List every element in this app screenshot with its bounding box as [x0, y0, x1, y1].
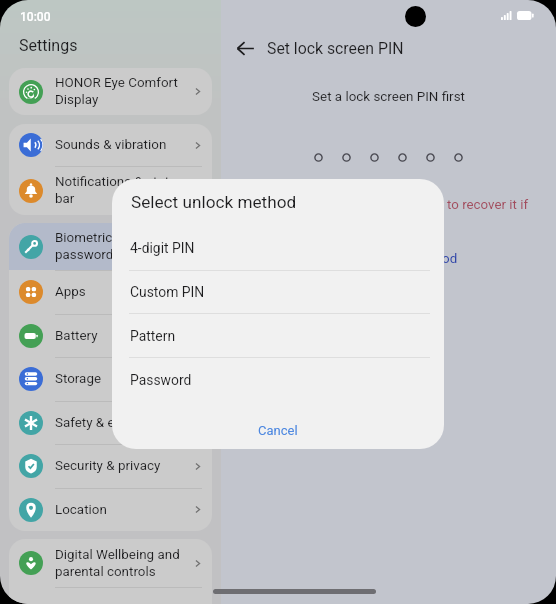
- staticText: Battery: [55, 328, 191, 344]
- button[interactable]: Digital Wellbeing and parental controls: [9, 539, 212, 587]
- staticText: Set lock screen PIN: [267, 39, 404, 58]
- staticText: Digital Wellbeing and parental controls: [55, 547, 191, 580]
- staticText: Password: [130, 372, 192, 388]
- button[interactable]: Accessibility: [9, 587, 212, 604]
- button[interactable]: HONOR Eye Comfort Display: [9, 68, 212, 115]
- button[interactable]: Battery: [9, 314, 212, 357]
- button[interactable]: Sounds & vibration: [9, 124, 212, 166]
- staticText: Set a lock screen PIN first: [221, 89, 556, 105]
- staticText: Change unlock method: [320, 251, 458, 267]
- button[interactable]: Password: [112, 358, 444, 401]
- staticText: Set your PIN. This is the only way to re…: [221, 197, 556, 235]
- staticText: Custom PIN: [130, 284, 205, 300]
- staticText: Settings: [19, 36, 78, 55]
- staticText: Storage: [55, 371, 191, 387]
- button[interactable]: Back: [229, 32, 261, 64]
- button[interactable]: Biometrics & password: [9, 223, 212, 270]
- button[interactable]: Notifications & status bar: [9, 166, 212, 215]
- staticText: 10:00: [20, 10, 51, 24]
- staticText: Location: [55, 502, 191, 518]
- button[interactable]: Cancel: [112, 415, 444, 445]
- staticText: Select unlock method: [131, 192, 297, 212]
- staticText: Pattern: [130, 328, 176, 344]
- staticText: Safety & emergency: [55, 415, 191, 431]
- staticText: Notifications & status bar: [55, 174, 191, 207]
- button[interactable]: Apps: [9, 270, 212, 314]
- button[interactable]: Storage: [9, 357, 212, 401]
- staticText: 4-digit PIN: [130, 240, 195, 256]
- staticText: Sounds & vibration: [55, 137, 191, 153]
- button[interactable]: Custom PIN: [112, 271, 444, 313]
- staticText: HONOR Eye Comfort Display: [55, 75, 191, 108]
- button[interactable]: Change unlock method: [221, 251, 556, 267]
- staticText: Apps: [55, 284, 191, 300]
- button[interactable]: Safety & emergency: [9, 401, 212, 444]
- button[interactable]: Location: [9, 488, 212, 531]
- staticText: Security & privacy: [55, 458, 191, 474]
- button[interactable]: 4-digit PIN: [112, 225, 444, 270]
- staticText: Biometrics & password: [55, 230, 191, 263]
- button[interactable]: Security & privacy: [9, 444, 212, 488]
- button[interactable]: Pattern: [112, 314, 444, 357]
- staticText: Cancel: [258, 423, 298, 438]
